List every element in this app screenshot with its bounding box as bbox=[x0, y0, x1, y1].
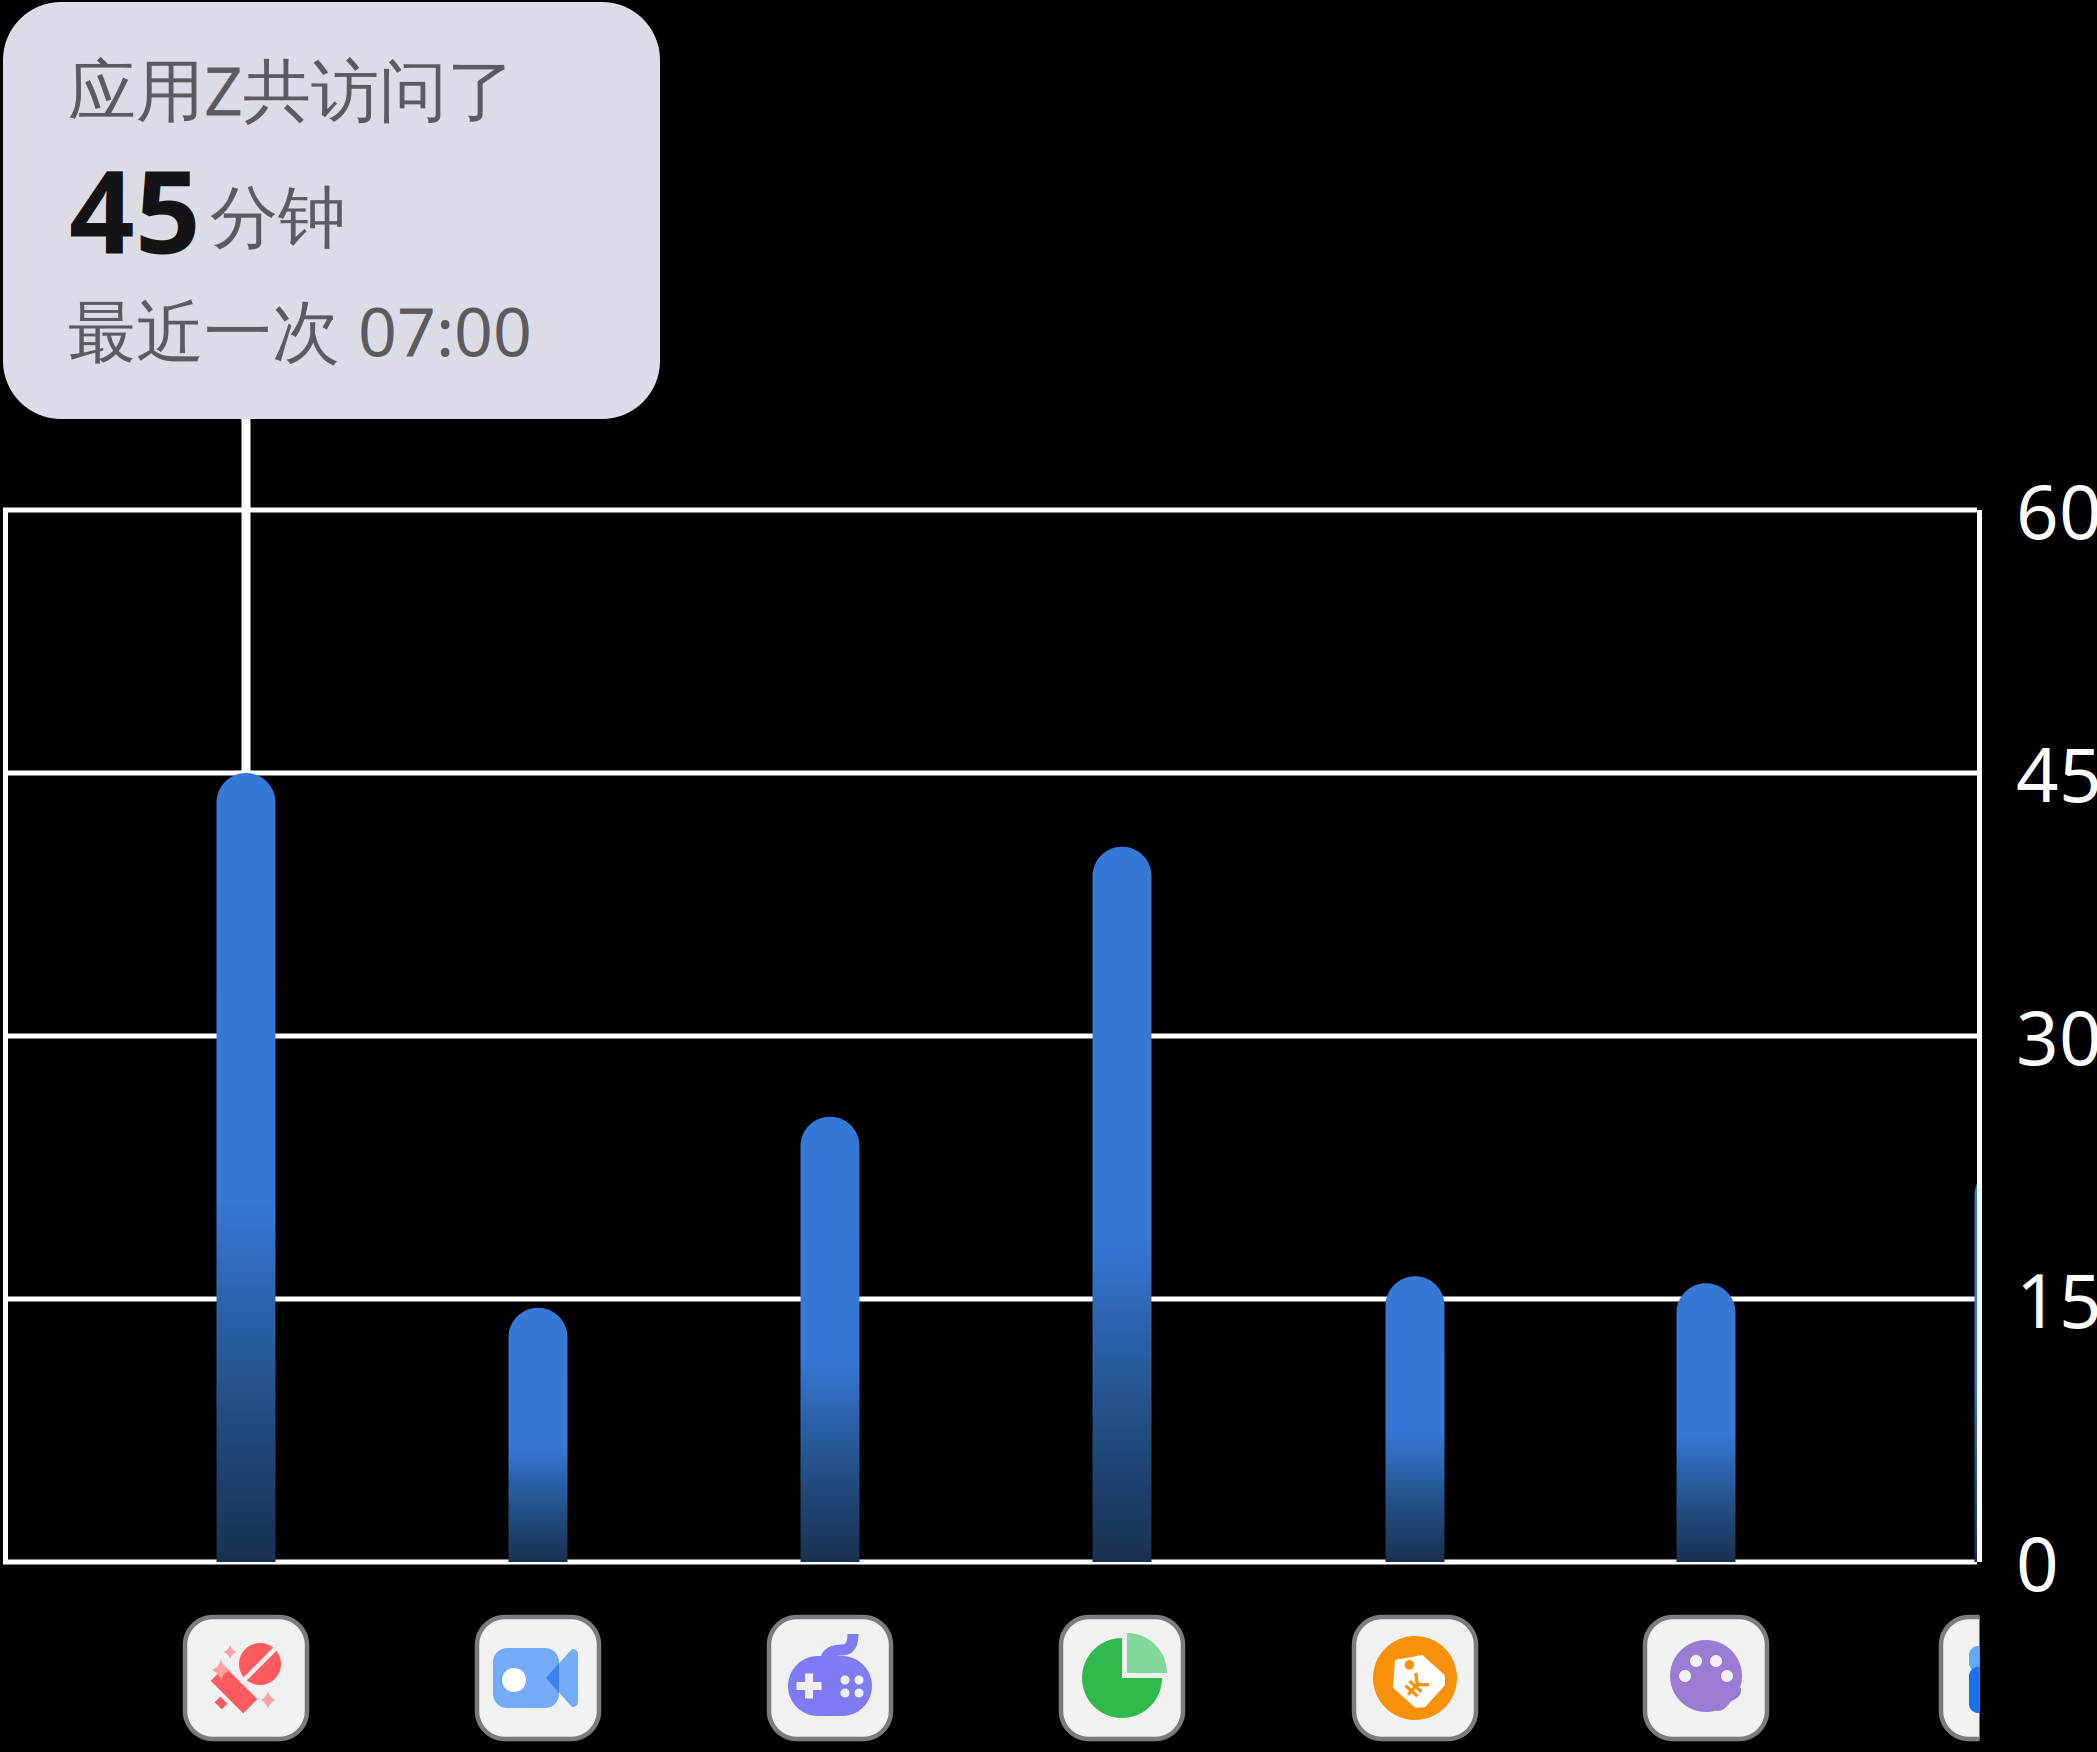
staticText: 30 bbox=[2016, 986, 2097, 1086]
staticText: 15 bbox=[2016, 1249, 2097, 1349]
staticText: 60 bbox=[2016, 460, 2097, 560]
staticText: 最近一次 07:00 bbox=[68, 285, 532, 375]
button[interactable]: 视频通话 bbox=[477, 1617, 599, 1739]
staticText: 0 bbox=[2016, 1512, 2059, 1612]
button[interactable]: 游戏 bbox=[769, 1617, 891, 1739]
staticText: 45 bbox=[69, 133, 201, 285]
button[interactable]: 统计 bbox=[1061, 1617, 1183, 1739]
staticText: 分钟 bbox=[210, 176, 346, 260]
staticText: 应用Z共访问了 bbox=[68, 44, 515, 134]
button[interactable]: 笔记 bbox=[1941, 1617, 2063, 1739]
button[interactable]: 绘画 bbox=[1645, 1617, 1767, 1739]
staticText: 45 bbox=[2016, 723, 2097, 823]
button[interactable]: 优惠 bbox=[1354, 1617, 1476, 1739]
button[interactable]: 卡拉OK bbox=[185, 1617, 307, 1739]
